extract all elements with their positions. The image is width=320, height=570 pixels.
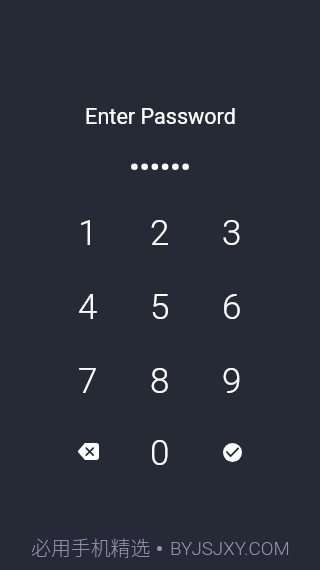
staticText: 4 xyxy=(78,287,98,328)
button[interactable]: 3 xyxy=(196,213,268,273)
button[interactable]: 0 xyxy=(124,433,196,493)
button[interactable]: 5 xyxy=(124,287,196,347)
staticText: BYJSJXY.COM xyxy=(170,538,290,560)
staticText: 1 xyxy=(78,213,98,254)
staticText: 7 xyxy=(78,361,98,402)
button[interactable]: 4 xyxy=(52,287,124,347)
button[interactable]: 9 xyxy=(196,361,268,421)
staticText: 9 xyxy=(222,361,242,402)
button[interactable]: 1 xyxy=(52,213,124,273)
button[interactable]: Confirm xyxy=(196,433,268,493)
staticText: 5 xyxy=(150,287,170,328)
staticText: 必用手机精选 xyxy=(31,533,151,562)
staticText: 8 xyxy=(150,361,170,402)
staticText: 2 xyxy=(150,213,170,254)
button[interactable]: 6 xyxy=(196,287,268,347)
button[interactable]: 2 xyxy=(124,213,196,273)
staticText: 0 xyxy=(150,433,170,474)
staticText: Enter Password xyxy=(85,104,236,129)
button[interactable]: 7 xyxy=(52,361,124,421)
staticText: 6 xyxy=(222,287,242,328)
staticText: 3 xyxy=(222,213,242,254)
button[interactable]: Delete xyxy=(52,433,124,493)
button[interactable]: 8 xyxy=(124,361,196,421)
